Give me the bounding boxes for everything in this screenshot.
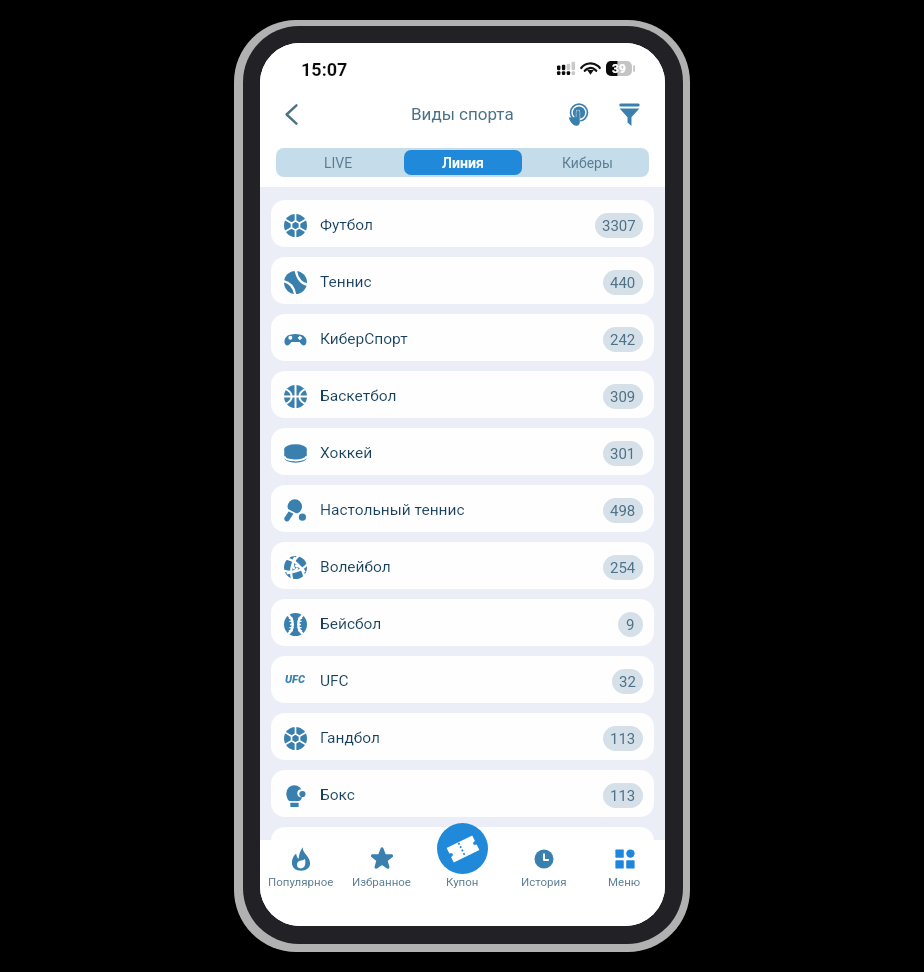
button[interactable]: История: [503, 840, 584, 926]
staticText: 3307: [602, 217, 636, 235]
staticText: Популярное: [268, 875, 334, 888]
button[interactable]: Back: [273, 96, 309, 132]
staticText: Меню: [608, 875, 641, 888]
button[interactable]: Киберы: [528, 150, 646, 175]
staticText: 15:07: [301, 59, 348, 80]
staticText: 113: [610, 730, 636, 748]
button[interactable]: Теннис: [271, 257, 654, 304]
staticText: Линия: [442, 155, 484, 171]
button[interactable]: Меню: [584, 840, 665, 926]
button[interactable]: 888: [271, 827, 654, 874]
staticText: 888: [610, 844, 636, 862]
staticText: Виды спорта: [411, 104, 514, 124]
staticText: Купон: [446, 875, 479, 888]
staticText: UFC: [320, 672, 349, 690]
staticText: Хоккей: [320, 444, 373, 462]
button[interactable]: Футбол: [271, 200, 654, 247]
button[interactable]: Filter: [612, 97, 646, 131]
staticText: Гандбол: [320, 729, 380, 747]
staticText: Теннис: [320, 273, 372, 291]
staticText: История: [521, 875, 567, 888]
staticText: Футбол: [320, 216, 374, 234]
staticText: UFC: [285, 673, 305, 686]
button[interactable]: Волейбол: [271, 542, 654, 589]
staticText: 113: [610, 787, 636, 805]
staticText: Волейбол: [320, 558, 391, 576]
button[interactable]: Бокс: [271, 770, 654, 817]
button[interactable]: Настольный теннис: [271, 485, 654, 532]
staticText: Настольный теннис: [320, 501, 465, 519]
staticText: Бейсбол: [320, 615, 382, 633]
staticText: 498: [610, 502, 636, 520]
staticText: 309: [610, 388, 636, 406]
button[interactable]: LIVE: [279, 150, 398, 175]
button[interactable]: Гандбол: [271, 713, 654, 760]
staticText: 440: [610, 274, 636, 292]
button[interactable]: Хоккей: [271, 428, 654, 475]
staticText: 242: [610, 331, 636, 349]
staticText: 32: [619, 673, 636, 691]
button[interactable]: Популярное: [260, 840, 341, 926]
button[interactable]: Избранное: [341, 840, 422, 926]
staticText: 301: [610, 445, 636, 463]
button[interactable]: КиберСпорт: [271, 314, 654, 361]
button[interactable]: UFC: [271, 656, 654, 703]
button[interactable]: Баскетбол: [271, 371, 654, 418]
button[interactable]: Купон: [422, 840, 503, 926]
staticText: Киберы: [562, 155, 613, 171]
staticText: 254: [610, 559, 636, 577]
button[interactable]: Бейсбол: [271, 599, 654, 646]
staticText: Избранное: [352, 875, 411, 888]
staticText: 39: [612, 62, 626, 76]
staticText: КиберСпорт: [320, 330, 408, 348]
staticText: Бокс: [320, 786, 355, 804]
staticText: Баскетбол: [320, 387, 397, 405]
button[interactable]: Линия: [404, 150, 522, 175]
staticText: LIVE: [324, 155, 353, 171]
button[interactable]: Quick bet: [562, 97, 596, 131]
staticText: 9: [626, 616, 635, 634]
